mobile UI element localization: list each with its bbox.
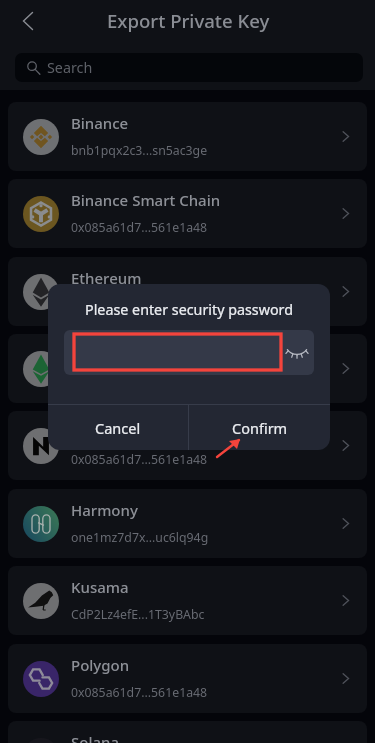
staticText: 0x085a61d7...561e1a48	[71, 684, 208, 701]
button[interactable]: Binance	[8, 102, 367, 171]
button[interactable]: Polygon	[8, 644, 367, 713]
button[interactable]: NEAR	[8, 411, 367, 480]
staticText: Ethereum Classic	[71, 345, 194, 365]
staticText: Binance Smart Chain	[71, 190, 221, 210]
staticText: Harmony	[71, 500, 138, 520]
staticText: 0x085a61d7...561e1a48	[71, 219, 208, 236]
staticText: Kusama	[71, 577, 129, 597]
button[interactable]: Binance Smart Chain	[8, 179, 367, 248]
button[interactable]: Confirm	[189, 405, 330, 450]
button[interactable]: Back	[10, 3, 46, 39]
button[interactable]: Search	[15, 53, 363, 82]
button[interactable]: Ethereum Classic	[8, 334, 367, 403]
staticText: 0x085a61d7...561e1a48	[71, 374, 208, 391]
button[interactable]: Kusama	[8, 566, 367, 635]
staticText: 0x085a61d7...561e1a48	[71, 297, 208, 314]
button[interactable]: Password field	[74, 334, 281, 370]
staticText: Ethereum	[71, 268, 142, 288]
button[interactable]: Harmony	[8, 489, 367, 558]
staticText: 0x085a61d7...561e1a48	[71, 451, 208, 468]
button[interactable]: Toggle password visibility	[285, 340, 309, 364]
staticText: Cancel	[95, 418, 141, 438]
staticText: Confirm	[232, 418, 288, 438]
staticText: Search	[47, 58, 93, 77]
staticText: NEAR	[71, 422, 111, 442]
staticText: one1mz7d7x...uc6lq94g	[71, 529, 209, 546]
button[interactable]: Cancel	[48, 405, 188, 450]
staticText: Polygon	[71, 655, 130, 675]
staticText: Export Private Key	[107, 8, 270, 33]
button[interactable]: Solana	[8, 721, 367, 743]
staticText: Solana	[71, 732, 120, 743]
button[interactable]: Ethereum	[8, 257, 367, 326]
staticText: Please enter security password	[48, 300, 330, 319]
staticText: bnb1pqx2c3...sn5ac3ge	[71, 142, 208, 159]
staticText: CdP2Lz4efE...1T3yBAbc	[71, 606, 205, 623]
staticText: Binance	[71, 113, 129, 133]
